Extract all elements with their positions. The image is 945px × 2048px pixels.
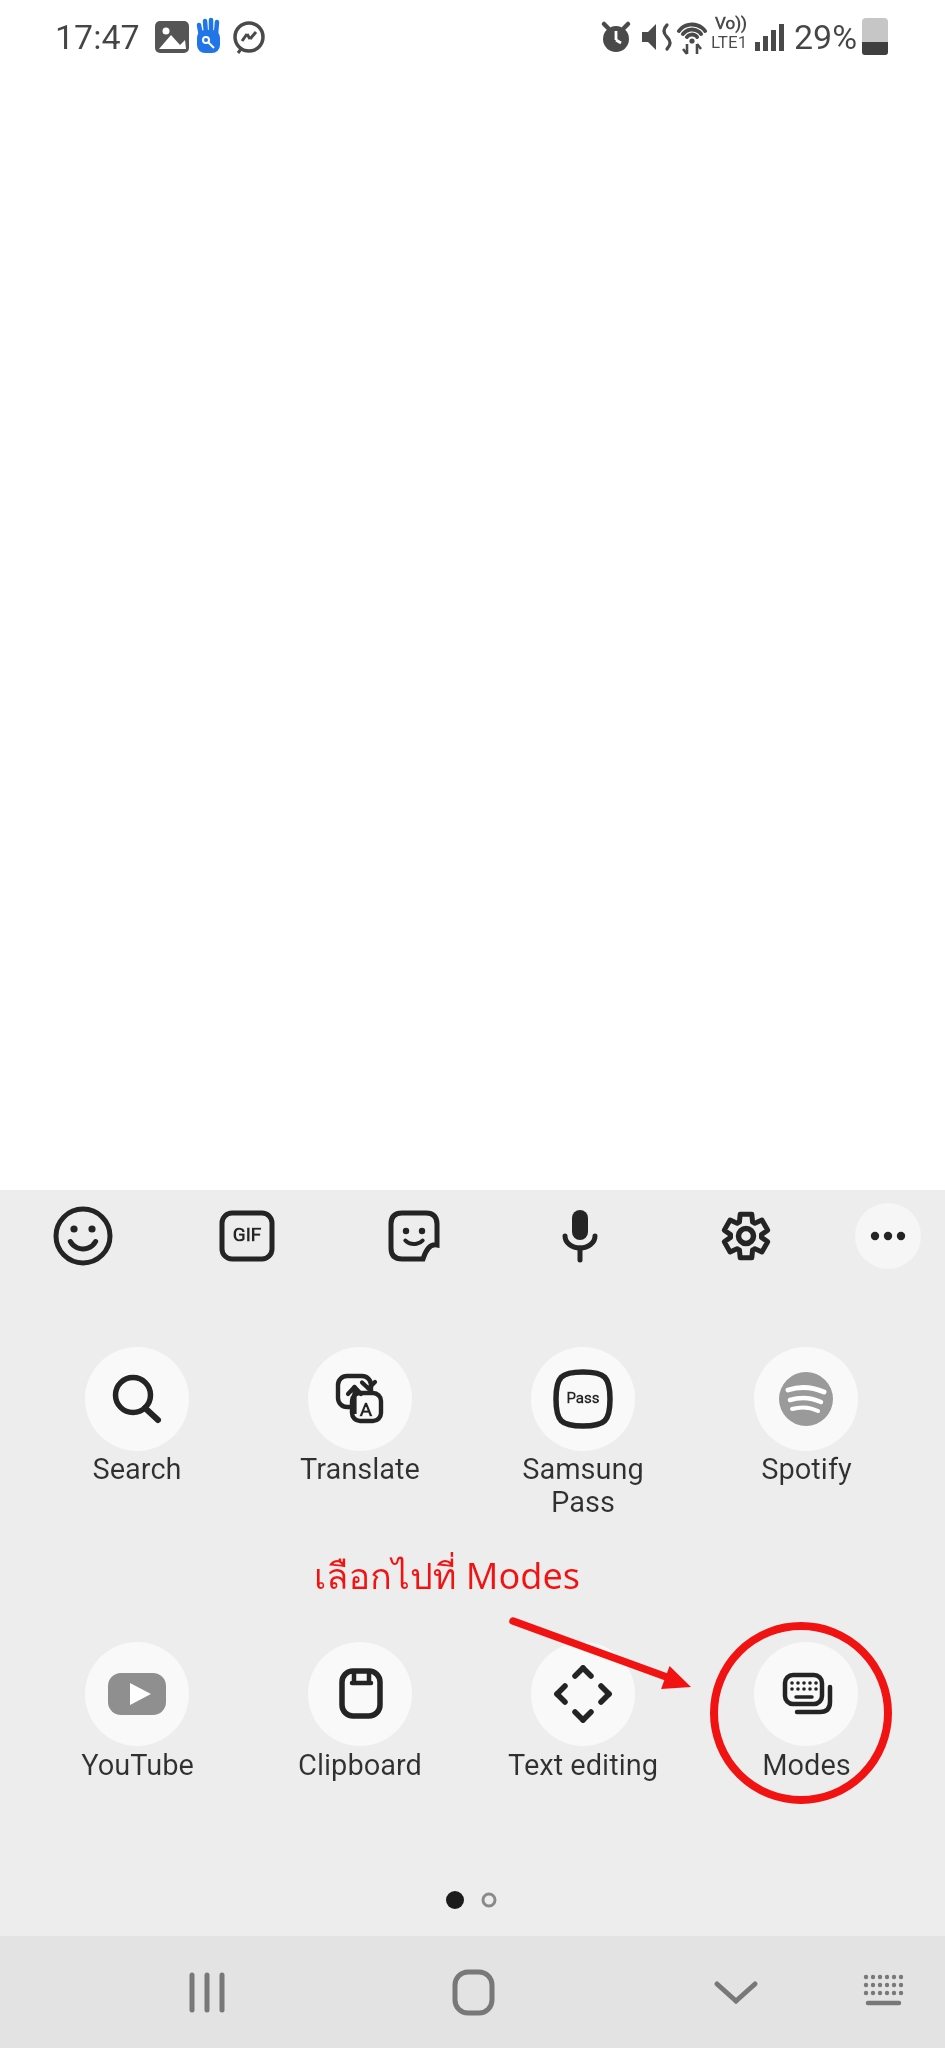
staticText: 17:47 — [55, 17, 140, 57]
staticText: Pass — [553, 1389, 613, 1407]
staticText: Translate — [300, 1452, 420, 1486]
staticText: A — [354, 1398, 378, 1420]
button[interactable] — [308, 1642, 412, 1746]
button[interactable] — [152, 1946, 262, 2041]
button[interactable] — [207, 1196, 287, 1276]
button[interactable] — [829, 1946, 939, 2041]
button[interactable] — [540, 1196, 620, 1276]
button[interactable] — [754, 1347, 858, 1451]
staticText: Clipboard — [298, 1748, 422, 1782]
button[interactable] — [681, 1946, 791, 2041]
button[interactable] — [531, 1642, 635, 1746]
staticText: Search — [92, 1452, 182, 1486]
button[interactable] — [531, 1347, 635, 1451]
staticText: เลือกไปที่ Modes — [314, 1548, 580, 1605]
staticText: Modes — [762, 1748, 851, 1782]
button[interactable] — [419, 1946, 529, 2041]
staticText: Samsung Pass — [522, 1452, 644, 1519]
button[interactable] — [374, 1196, 454, 1276]
button[interactable] — [706, 1196, 786, 1276]
staticText: LTE1 — [711, 32, 748, 52]
button[interactable] — [754, 1642, 858, 1746]
button[interactable] — [85, 1642, 189, 1746]
staticText: Text editing — [508, 1748, 658, 1782]
staticText: Vo)) — [715, 13, 747, 33]
staticText: YouTube — [81, 1748, 194, 1782]
button[interactable] — [85, 1347, 189, 1451]
staticText: 29% — [794, 17, 858, 57]
button[interactable] — [308, 1347, 412, 1451]
staticText: GIF — [225, 1223, 269, 1245]
button[interactable] — [848, 1196, 928, 1276]
button[interactable] — [43, 1196, 123, 1276]
staticText: Spotify — [761, 1452, 852, 1486]
